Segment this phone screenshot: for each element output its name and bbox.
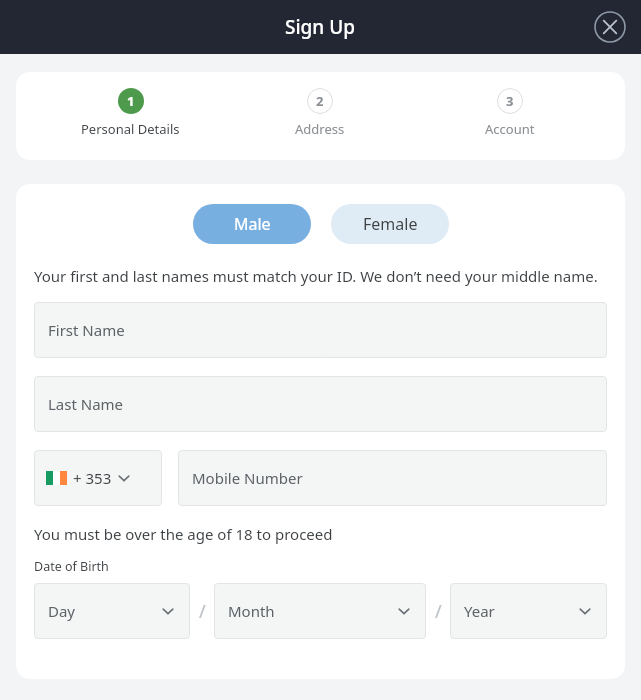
staticText: + 353 xyxy=(73,468,112,488)
staticText: Male xyxy=(234,213,271,235)
staticText: Your first and last names must match you… xyxy=(34,266,598,286)
button[interactable]: Day xyxy=(34,583,190,639)
staticText: Personal Details xyxy=(81,120,180,138)
button[interactable]: Month xyxy=(214,583,426,639)
staticText: Female xyxy=(363,213,418,235)
staticText: Year xyxy=(464,601,495,621)
button[interactable]: Last Name xyxy=(34,376,607,432)
button[interactable]: First Name xyxy=(34,302,607,358)
button[interactable]: + 353 xyxy=(34,450,162,506)
staticText: 2 xyxy=(316,92,324,110)
button[interactable]: Male xyxy=(193,204,311,244)
staticText: You must be over the age of 18 to procee… xyxy=(34,524,333,544)
staticText: Last Name xyxy=(48,394,124,414)
button[interactable]: Mobile Number xyxy=(178,450,607,506)
staticText: Sign Up xyxy=(285,14,356,40)
staticText: Account xyxy=(485,120,535,138)
staticText: First Name xyxy=(48,320,125,340)
button[interactable]: Year xyxy=(450,583,607,639)
button[interactable]: Close xyxy=(591,8,629,46)
staticText: 1 xyxy=(127,92,135,110)
staticText: / xyxy=(435,599,442,624)
staticText: Date of Birth xyxy=(34,558,109,575)
staticText: Day xyxy=(48,601,76,621)
staticText: Mobile Number xyxy=(192,468,303,488)
staticText: Month xyxy=(228,601,275,621)
button[interactable]: Female xyxy=(331,204,449,244)
staticText: Address xyxy=(295,120,345,138)
staticText: / xyxy=(199,599,206,624)
staticText: 3 xyxy=(506,92,514,110)
